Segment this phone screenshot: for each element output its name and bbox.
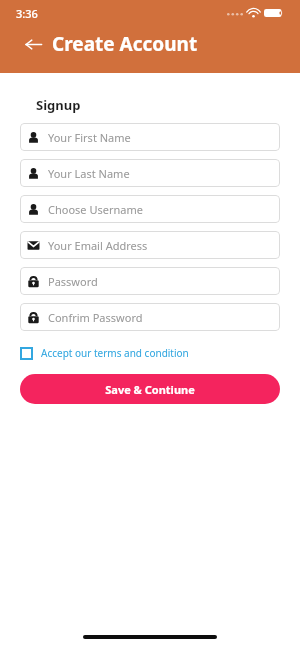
button[interactable]: Your Email Address <box>20 231 280 259</box>
staticText: Signup <box>36 96 81 114</box>
staticText: Your Email Address <box>48 238 148 253</box>
button[interactable]: Your Last Name <box>20 159 280 187</box>
button[interactable]: Back <box>22 33 44 55</box>
button[interactable]: Accept our terms and condition <box>20 344 189 362</box>
staticText: Password <box>48 274 98 289</box>
staticText: Choose Username <box>48 202 143 217</box>
staticText: Create Account <box>52 31 198 57</box>
staticText: Confrim Password <box>48 310 143 325</box>
staticText: Your Last Name <box>48 166 130 181</box>
staticText: Save & Contiune <box>105 382 195 397</box>
button[interactable]: Your First Name <box>20 123 280 151</box>
button[interactable]: Save & Contiune <box>20 374 280 404</box>
button[interactable]: Password <box>20 267 280 295</box>
staticText: Accept our terms and condition <box>41 346 189 360</box>
staticText: Your First Name <box>48 130 131 145</box>
button[interactable]: Confrim Password <box>20 303 280 331</box>
staticText: 3:36 <box>16 6 38 21</box>
button[interactable]: Choose Username <box>20 195 280 223</box>
